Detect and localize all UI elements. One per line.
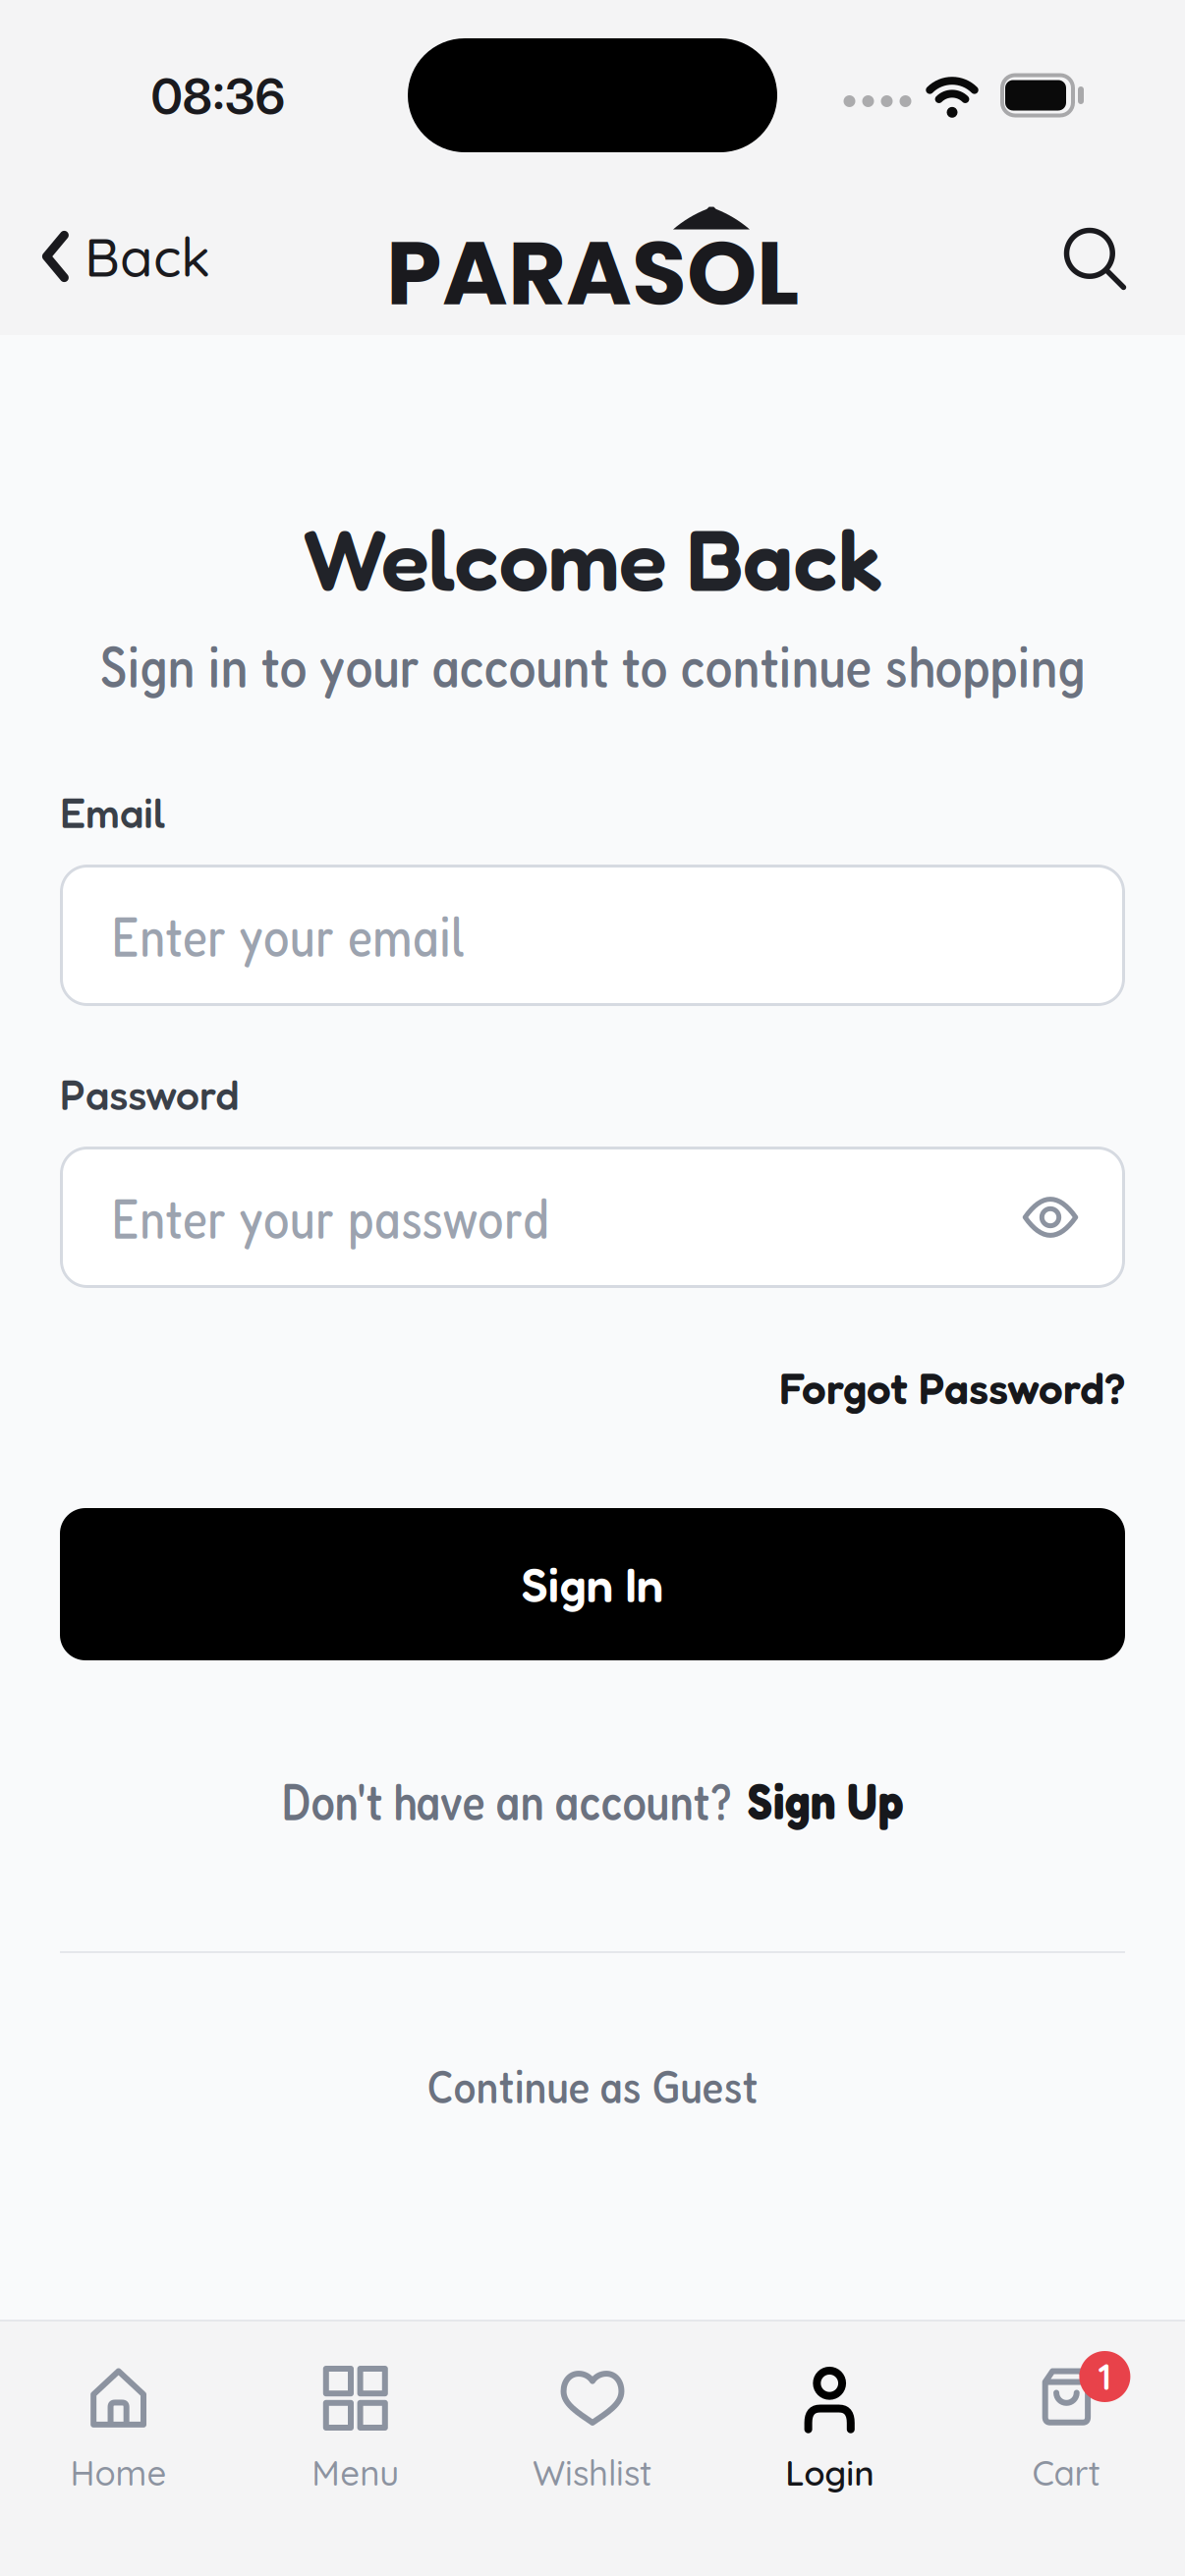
button[interactable]: Sign Up xyxy=(747,1771,903,1831)
staticText: Don't have an account? xyxy=(282,1771,732,1831)
staticText: Enter your password xyxy=(111,1184,549,1251)
button[interactable]: Enter your email xyxy=(60,865,1125,1006)
staticText: Sign in to your account to continue shop… xyxy=(100,630,1085,700)
button[interactable]: Login xyxy=(711,2365,948,2492)
button[interactable]: Show password xyxy=(1023,1198,1078,1237)
staticText: Menu xyxy=(312,2452,399,2494)
staticText: Enter your email xyxy=(111,902,465,969)
button[interactable]: Home xyxy=(0,2365,237,2492)
staticText: Login xyxy=(785,2452,874,2494)
button[interactable]: 1 xyxy=(948,2365,1185,2492)
button[interactable]: Wishlist xyxy=(474,2365,711,2492)
staticText: Sign Up xyxy=(747,1771,903,1831)
button[interactable]: Forgot Password? xyxy=(779,1367,1125,1410)
staticText: 1 xyxy=(1098,2354,1112,2399)
staticText: Email xyxy=(60,787,165,838)
staticText: Continue as Guest xyxy=(427,2057,758,2114)
staticText: Forgot Password? xyxy=(779,1362,1125,1414)
staticText: Back xyxy=(85,223,210,290)
staticText: Home xyxy=(70,2452,167,2494)
button[interactable]: Menu xyxy=(237,2365,474,2492)
button[interactable]: Sign In xyxy=(60,1508,1125,1660)
staticText: Wishlist xyxy=(533,2452,652,2494)
staticText: Cart xyxy=(1032,2452,1101,2494)
button[interactable]: Search xyxy=(1063,227,1126,290)
staticText: Sign In xyxy=(521,1555,664,1614)
staticText: Welcome Back xyxy=(303,508,882,610)
staticText: Password xyxy=(60,1069,240,1120)
staticText: 08:36 xyxy=(151,66,285,126)
button[interactable]: Back xyxy=(41,223,210,290)
button[interactable]: Enter your password xyxy=(60,1147,1125,1288)
button[interactable]: Continue as Guest xyxy=(60,2062,1125,2109)
staticText: PARASOL xyxy=(386,211,799,335)
